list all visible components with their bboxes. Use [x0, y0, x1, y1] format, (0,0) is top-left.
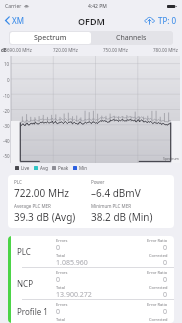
- button[interactable]: Profile 1: [8, 300, 174, 323]
- staticText: Peak: [58, 165, 69, 171]
- staticText: 0: [163, 258, 168, 265]
- staticText: Spectrum: [34, 33, 67, 43]
- button[interactable]: Min: [71, 165, 90, 171]
- staticText: Errors: [56, 238, 68, 243]
- staticText: Channels: [116, 33, 147, 43]
- button[interactable]: PLC: [8, 236, 174, 267]
- staticText: PLC: [17, 246, 56, 257]
- button[interactable]: Avg: [32, 165, 50, 171]
- staticText: Spectrum: [163, 156, 179, 161]
- staticText: 690.00 MHz: [7, 47, 32, 53]
- staticText: NCP: [17, 278, 56, 289]
- staticText: 722.00 MHz: [14, 186, 70, 200]
- staticText: 0: [163, 307, 168, 317]
- staticText: Total: [56, 285, 66, 290]
- staticText: Error Ratio: [147, 270, 168, 275]
- staticText: TP: 0: [158, 15, 177, 26]
- staticText: -10: [3, 93, 10, 99]
- staticText: 39.3 dB (Avg): [14, 210, 76, 224]
- staticText: Corrected: [149, 317, 168, 321]
- staticText: -40: [3, 138, 10, 144]
- staticText: -20: [3, 108, 10, 114]
- staticText: Live: [21, 165, 30, 171]
- staticText: -30: [3, 123, 10, 129]
- staticText: Error Ratio: [147, 302, 168, 307]
- staticText: Profile 1: [17, 306, 56, 317]
- button[interactable]: Live: [13, 165, 32, 171]
- staticText: 38.2 dB (Min): [91, 210, 153, 224]
- button[interactable]: Channels: [91, 32, 172, 44]
- staticText: Error Ratio: [147, 238, 168, 243]
- staticText: Total: [56, 253, 66, 258]
- staticText: Errors: [56, 302, 68, 307]
- button[interactable]: Upload to cloud: [139, 13, 182, 28]
- staticText: 0: [56, 307, 61, 317]
- staticText: dB: [1, 47, 7, 53]
- staticText: 0: [56, 243, 61, 253]
- staticText: Power: [91, 179, 105, 185]
- button[interactable]: XM: [0, 13, 30, 28]
- staticText: Average PLC MER: [14, 203, 51, 209]
- staticText: OFDM: [78, 15, 105, 27]
- staticText: Corrected: [149, 253, 168, 258]
- staticText: 0: [163, 290, 168, 297]
- staticText: 1,085,960: [56, 258, 88, 265]
- staticText: 13,900,272: [56, 290, 92, 297]
- staticText: -50: [3, 153, 10, 159]
- staticText: PLC: [14, 179, 22, 185]
- staticText: 10: [4, 61, 10, 67]
- staticText: Min: [79, 165, 88, 171]
- staticText: Avg: [40, 165, 48, 171]
- staticText: –6.4 dBmV: [91, 186, 141, 200]
- staticText: 780.00 MHz: [153, 47, 178, 53]
- staticText: Total: [56, 317, 66, 321]
- staticText: XM: [12, 15, 24, 26]
- staticText: Errors: [56, 270, 68, 275]
- staticText: Corrected: [149, 285, 168, 290]
- button[interactable]: Spectrum: [10, 32, 91, 44]
- staticText: 750.00 MHz: [103, 47, 128, 53]
- staticText: 0: [7, 77, 10, 83]
- staticText: 0: [56, 275, 61, 285]
- staticText: Carrier: [5, 3, 22, 10]
- button[interactable]: Peak: [50, 165, 71, 171]
- staticText: 4:42 PM: [88, 3, 107, 10]
- staticText: 720.00 MHz: [53, 47, 78, 53]
- button[interactable]: NCP: [8, 268, 174, 299]
- staticText: 0: [163, 243, 168, 253]
- other: Upload to cloud: [144, 16, 155, 25]
- staticText: Minimum PLC MER: [91, 203, 131, 209]
- staticText: 0: [163, 275, 168, 285]
